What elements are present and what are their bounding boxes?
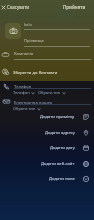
button[interactable]: Додати поле: [0, 172, 94, 186]
button[interactable]: [24, 20, 90, 32]
button[interactable]: Телефон: [12, 89, 67, 96]
staticText: Телефон: [14, 84, 32, 90]
staticText: Компанія: [14, 51, 34, 57]
staticText: Додати поле: [49, 176, 75, 182]
button[interactable]: Зберегти до Контакти: [11, 68, 60, 78]
button[interactable]: Обрати тип: [12, 105, 42, 112]
staticText: Обрати тип: [38, 90, 61, 95]
button[interactable]: [24, 36, 90, 48]
button[interactable]: Додати веб-сайт: [0, 157, 94, 171]
button[interactable]: Додати дату: [0, 141, 94, 155]
staticText: Ім'я: [24, 22, 32, 28]
button[interactable]: Додати адресу: [0, 126, 94, 140]
staticText: Додати примітку: [40, 114, 75, 120]
button[interactable]: Add photo: [5, 23, 21, 39]
staticText: Зберегти до Контакти: [13, 70, 58, 76]
staticText: Скасувати: [7, 4, 30, 10]
button[interactable]: [14, 49, 91, 61]
staticText: Додати дату: [50, 145, 75, 151]
button[interactable]: [14, 98, 91, 106]
button[interactable]: Скасувати: [0, 3, 31, 11]
button[interactable]: Додати примітку: [0, 110, 94, 124]
staticText: Прізвище: [24, 38, 44, 44]
staticText: Додати адресу: [45, 130, 75, 136]
button[interactable]: Прийняти: [60, 1, 89, 13]
staticText: Прийняти: [63, 4, 86, 10]
button[interactable]: [14, 82, 91, 91]
staticText: Додати веб-сайт: [41, 161, 75, 167]
staticText: Електронна пошта: [14, 100, 52, 106]
staticText: Телефон: [13, 90, 30, 95]
staticText: Обрати тип: [13, 106, 36, 111]
